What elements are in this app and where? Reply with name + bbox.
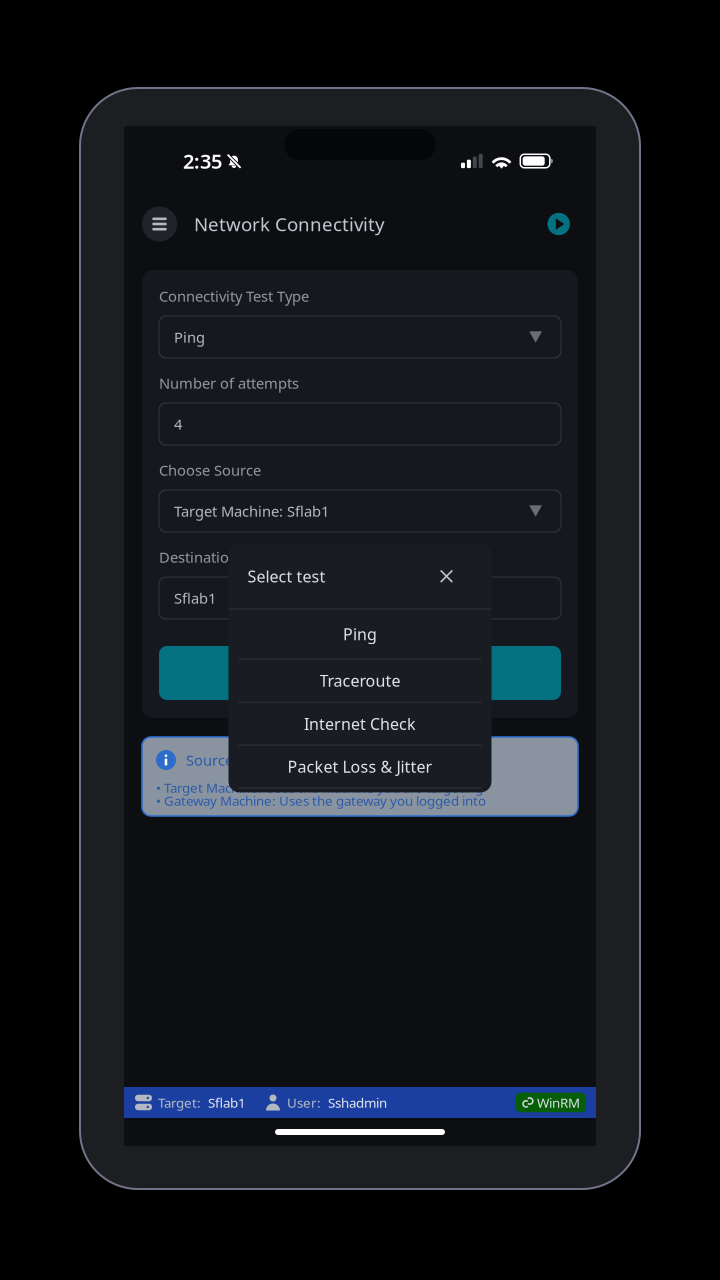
staticText: User: xyxy=(287,1094,321,1111)
staticText: Sflab1 xyxy=(208,1094,246,1111)
staticText: WinRM xyxy=(537,1094,580,1111)
button[interactable]: Run Test xyxy=(159,646,561,700)
staticText: 2:35 xyxy=(183,148,222,174)
staticText: Number of attempts xyxy=(159,373,299,393)
staticText: Select test xyxy=(247,566,325,587)
button[interactable]: WinRM xyxy=(515,1093,586,1112)
button[interactable]: Menu xyxy=(142,206,177,241)
button[interactable]: Target Machine: Sflab1 xyxy=(159,490,561,532)
staticText: Run Test xyxy=(323,661,396,684)
button[interactable]: Ping xyxy=(228,609,491,658)
staticText: Internet Check xyxy=(304,713,416,734)
staticText: Target Machine: Sflab1 xyxy=(174,501,329,521)
staticText: Connectivity Test Type xyxy=(159,286,309,306)
staticText: Ping xyxy=(343,623,377,645)
staticText: Network Connectivity xyxy=(194,212,385,236)
staticText: • Target Machine: Uses the machine you a… xyxy=(156,779,483,796)
button[interactable]: Close xyxy=(439,569,453,583)
staticText: Source values explained xyxy=(186,750,351,770)
button[interactable]: Traceroute xyxy=(228,659,491,702)
staticText: • Gateway Machine: Uses the gateway you … xyxy=(156,792,486,809)
staticText: 4 xyxy=(174,414,182,434)
button[interactable]: Packet Loss & Jitter xyxy=(228,746,491,787)
staticText: Packet Loss & Jitter xyxy=(287,756,432,777)
button[interactable]: Ping xyxy=(159,316,561,358)
staticText: Target: xyxy=(158,1094,201,1111)
staticText: Traceroute xyxy=(319,670,400,691)
staticText: Destination xyxy=(159,547,238,567)
button[interactable]: Internet Check xyxy=(228,703,491,745)
staticText: Ping xyxy=(174,327,205,347)
staticText: Choose Source xyxy=(159,460,261,480)
staticText: Sshadmin xyxy=(328,1094,387,1111)
staticText: Sflab1 xyxy=(174,588,216,608)
button[interactable]: Run test xyxy=(547,213,570,235)
